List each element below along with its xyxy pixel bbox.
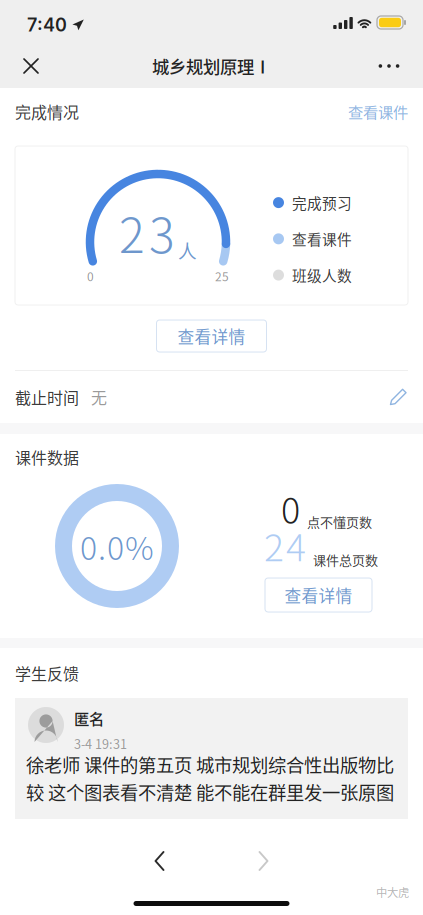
button[interactable]: 查看详情 xyxy=(156,320,266,352)
button[interactable]: 编辑截止时间 xyxy=(389,387,408,406)
button[interactable]: 查看课件 xyxy=(348,88,408,134)
staticText: 0 xyxy=(107,523,124,569)
staticText: 城乡规划原理Ⅰ xyxy=(152,53,271,79)
staticText: 4 xyxy=(286,518,306,572)
staticText: 学生反馈 xyxy=(15,661,79,685)
staticText: 徐老师 课件的第五页 城市规划综合性出版物比较 这个图表看不清楚 能不能在群里发… xyxy=(26,751,394,805)
staticText: 课件数据 xyxy=(15,445,79,469)
staticText: 0 xyxy=(87,267,94,285)
staticText: 课件总页数 xyxy=(313,550,378,569)
staticText: 查看课件 xyxy=(292,228,352,249)
staticText: 中大虎 xyxy=(376,884,409,900)
staticText: 查看课件 xyxy=(348,100,408,123)
staticText: 点不懂页数 xyxy=(307,512,372,531)
staticText: 完成预习 xyxy=(292,192,352,213)
staticText: 3-4 19:31 xyxy=(74,734,127,752)
staticText: 3 xyxy=(149,197,175,267)
staticText: 2 xyxy=(264,518,284,572)
button[interactable]: Forward xyxy=(249,843,277,879)
staticText: 查看详情 xyxy=(177,324,245,348)
button[interactable]: Close xyxy=(13,48,49,84)
staticText: . xyxy=(98,523,106,569)
staticText: 查看详情 xyxy=(284,583,352,607)
staticText: 25 xyxy=(215,267,229,285)
staticText: 截止时间 xyxy=(15,385,79,409)
staticText: 2 xyxy=(119,197,145,267)
staticText: 0 xyxy=(281,482,300,534)
button[interactable]: 查看详情 xyxy=(265,578,372,612)
button[interactable]: Back xyxy=(145,843,173,879)
staticText: 班级人数 xyxy=(292,264,352,286)
button[interactable]: More xyxy=(368,48,410,84)
staticText: 完成情况 xyxy=(15,100,79,123)
staticText: 7:40 xyxy=(27,14,67,36)
staticText: 无 xyxy=(91,385,107,409)
staticText: % xyxy=(125,523,154,569)
staticText: 匿名 xyxy=(74,707,104,729)
staticText: 人 xyxy=(178,237,197,264)
staticText: 0 xyxy=(80,523,97,569)
